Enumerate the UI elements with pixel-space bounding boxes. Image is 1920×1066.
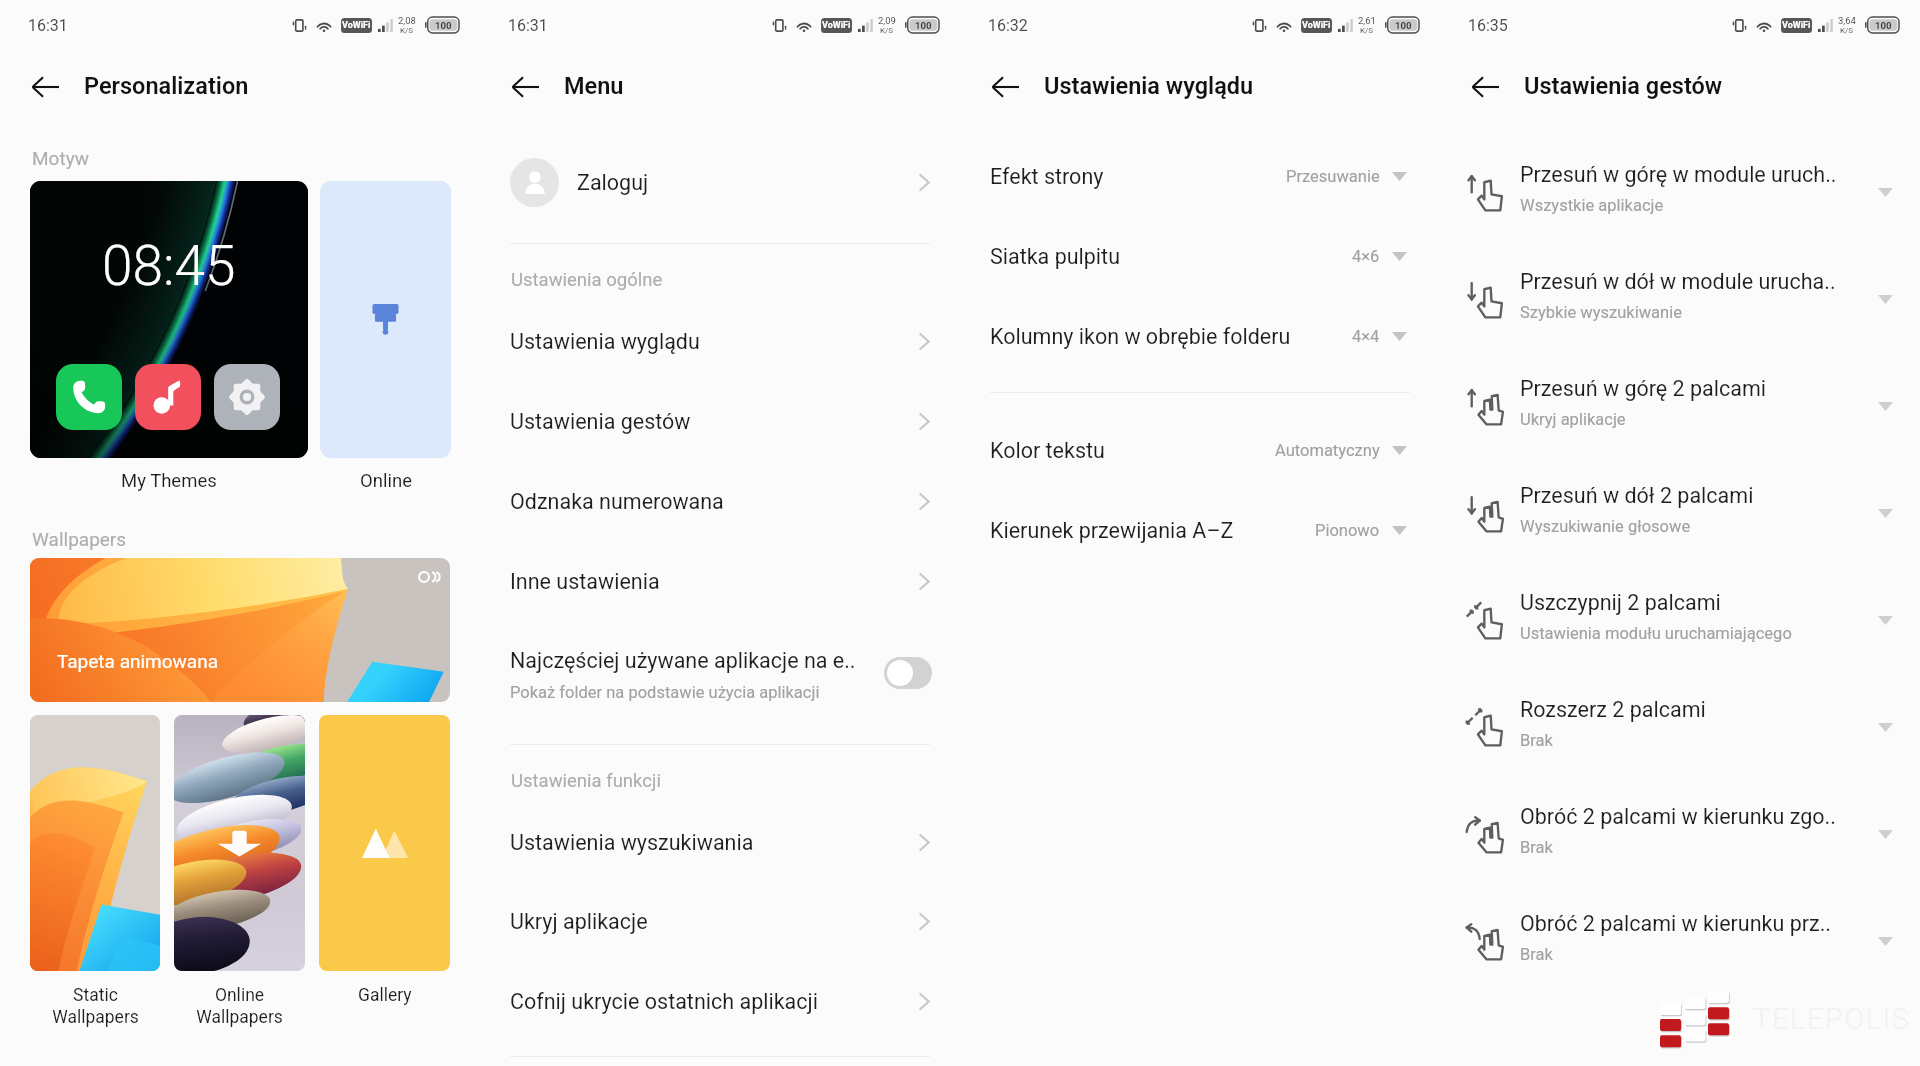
staticText: 4×6 [1352, 247, 1380, 266]
button[interactable]: Uszczypnij 2 palcami [1440, 567, 1920, 674]
staticText: 16:31 [508, 16, 548, 35]
staticText: Odznaka numerowana [510, 489, 724, 514]
button[interactable]: Back [503, 64, 548, 109]
button[interactable]: Ustawienia wyszukiwania [480, 802, 960, 882]
staticText: Personalization [84, 72, 249, 100]
staticText: 08:45 [102, 234, 236, 298]
staticText: Przesuń w górę w module uruch.. [1520, 162, 1837, 187]
staticText: Rozszerz 2 palcami [1520, 697, 1706, 722]
button[interactable]: Przesuń w górę 2 palcami [1440, 353, 1920, 460]
staticText: Ustawienia gestów [510, 409, 691, 434]
staticText: Uszczypnij 2 palcami [1520, 590, 1721, 615]
staticText: Szybkie wyszukiwanie [1520, 303, 1682, 322]
staticText: VoWiFi [822, 20, 851, 31]
button[interactable]: Online Wallpapers [174, 715, 305, 971]
staticText: Automatyczny [1275, 441, 1380, 460]
button[interactable]: Przesuń w dół w module urucha.. [1440, 246, 1920, 353]
staticText: Przesuń w dół w module urucha.. [1520, 269, 1836, 294]
staticText: 3,64 [1838, 15, 1856, 26]
staticText: 100 [1875, 20, 1892, 31]
button[interactable]: Online themes [320, 181, 451, 458]
staticText: K/S [880, 26, 894, 35]
staticText: Menu [564, 72, 624, 100]
button[interactable]: Ustawienia wyglądu [480, 301, 960, 381]
staticText: Kolumny ikon w obrębie folderu [990, 324, 1291, 349]
button[interactable]: Static Wallpapers [30, 715, 160, 971]
staticText: 4×4 [1352, 327, 1380, 346]
staticText: K/S [400, 26, 414, 35]
button[interactable]: Obróć 2 palcami w kierunku prz.. [1440, 888, 1920, 995]
staticText: Przesuń w dół 2 palcami [1520, 483, 1754, 508]
staticText: Pokaż folder na podstawie użycia aplikac… [510, 683, 820, 702]
staticText: Kolor tekstu [990, 438, 1105, 463]
staticText: Efekt strony [990, 164, 1104, 189]
staticText: Ukryj aplikacje [1520, 410, 1626, 429]
button[interactable]: Cofnij ukrycie ostatnich aplikacji [480, 961, 960, 1041]
staticText: Static Wallpapers [52, 985, 139, 1028]
staticText: Tapeta animowana [57, 650, 450, 672]
button[interactable]: Rozszerz 2 palcami [1440, 674, 1920, 781]
staticText: 2,61 [1358, 15, 1376, 26]
button[interactable]: Kolor tekstu [960, 410, 1440, 490]
staticText: Przesuń w górę 2 palcami [1520, 376, 1766, 401]
staticText: Ustawienia ogólne [511, 269, 663, 291]
staticText: Ukryj aplikacje [510, 909, 648, 934]
button[interactable]: Kierunek przewijania A–Z [960, 490, 1440, 570]
staticText: 16:31 [28, 16, 68, 35]
staticText: Obróć 2 palcami w kierunku prz.. [1520, 911, 1832, 936]
staticText: Ustawienia wyglądu [510, 329, 700, 354]
staticText: Ustawienia modułu uruchamiającego [1520, 624, 1792, 643]
button[interactable]: Back [983, 64, 1028, 109]
button[interactable]: Back [23, 64, 68, 109]
staticText: Przesuwanie [1286, 167, 1380, 186]
button[interactable]: Siatka pulpitu [960, 216, 1440, 296]
button[interactable]: Ustawienia gestów [480, 381, 960, 461]
button[interactable]: Przesuń w dół 2 palcami [1440, 460, 1920, 567]
staticText: Wyszukiwanie głosowe [1520, 517, 1691, 536]
button[interactable]: Odznaka numerowana [480, 461, 960, 541]
button[interactable]: Gallery [319, 715, 450, 971]
button[interactable]: Przesuń w górę w module uruch.. [1440, 139, 1920, 246]
staticText: K/S [1840, 26, 1854, 35]
button[interactable]: Ukryj aplikacje [480, 881, 960, 961]
staticText: Najczęściej używane aplikacje na e.. [510, 648, 856, 673]
staticText: Brak [1520, 731, 1553, 750]
staticText: Ustawienia wyglądu [1044, 72, 1254, 100]
button[interactable]: Inne ustawienia [480, 541, 960, 621]
staticText: Ustawienia wyszukiwania [510, 830, 754, 855]
staticText: My Themes [121, 470, 217, 492]
staticText: Gallery [358, 985, 412, 1006]
staticText: 2,09 [878, 15, 896, 26]
staticText: VoWiFi [1782, 20, 1811, 31]
staticText: Brak [1520, 838, 1553, 857]
button[interactable]: Tapeta animowana [30, 558, 450, 702]
staticText: Motyw [32, 147, 89, 169]
staticText: Brak [1520, 945, 1553, 964]
staticText: 100 [915, 20, 932, 31]
staticText: Kierunek przewijania A–Z [990, 518, 1234, 543]
staticText: 100 [1395, 20, 1412, 31]
staticText: Inne ustawienia [510, 569, 660, 594]
button[interactable]: Najczęściej używane aplikacje na e.. [480, 625, 960, 721]
staticText: 16:32 [988, 16, 1028, 35]
staticText: K/S [1360, 26, 1374, 35]
staticText: Ustawienia funkcji [511, 770, 661, 792]
button[interactable]: Toggle [884, 657, 932, 689]
staticText: Zaloguj [577, 170, 649, 195]
staticText: VoWiFi [1302, 20, 1331, 31]
staticText: 2,08 [398, 15, 416, 26]
button[interactable]: Kolumny ikon w obrębie folderu [960, 296, 1440, 376]
button[interactable]: My Themes [30, 181, 308, 458]
button[interactable]: Obróć 2 palcami w kierunku zgo.. [1440, 781, 1920, 888]
button[interactable]: Efekt strony [960, 136, 1440, 216]
staticText: Online [360, 470, 412, 492]
staticText: Wszystkie aplikacje [1520, 196, 1664, 215]
button[interactable]: Zaloguj [480, 134, 960, 230]
staticText: Obróć 2 palcami w kierunku zgo.. [1520, 804, 1836, 829]
staticText: Cofnij ukrycie ostatnich aplikacji [510, 989, 818, 1014]
button[interactable]: Back [1463, 64, 1508, 109]
staticText: Wallpapers [32, 528, 127, 550]
staticText: 100 [435, 20, 452, 31]
staticText: Siatka pulpitu [990, 244, 1120, 269]
staticText: VoWiFi [342, 20, 371, 31]
